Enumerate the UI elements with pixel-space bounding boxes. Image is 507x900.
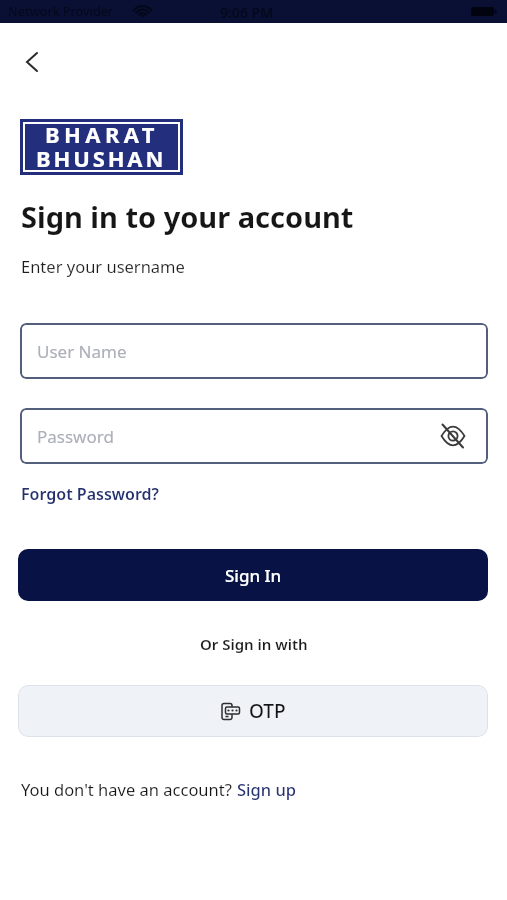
staticText: User Name (37, 340, 127, 363)
staticText: 9:06 PM (220, 3, 274, 22)
staticText: Enter your username (21, 255, 185, 277)
button[interactable]: OTP (18, 685, 488, 737)
button[interactable]: Sign In (18, 549, 488, 601)
staticText: Sign in to your account (21, 197, 354, 236)
staticText: BHARAT (45, 119, 159, 149)
button[interactable]: Sign up (237, 778, 296, 800)
staticText: Sign In (225, 564, 282, 587)
staticText: You don't have an account? (21, 778, 237, 800)
staticText: Password (37, 425, 114, 448)
button[interactable]: User Name (20, 323, 488, 379)
staticText: Or Sign in with (200, 634, 308, 654)
button[interactable]: Password (20, 408, 488, 464)
staticText: OTP (249, 698, 286, 724)
button[interactable]: Forgot Password? (21, 483, 159, 505)
staticText: Network Provider (8, 3, 114, 20)
staticText: BHUSHAN (36, 143, 167, 169)
button[interactable] (14, 44, 50, 80)
